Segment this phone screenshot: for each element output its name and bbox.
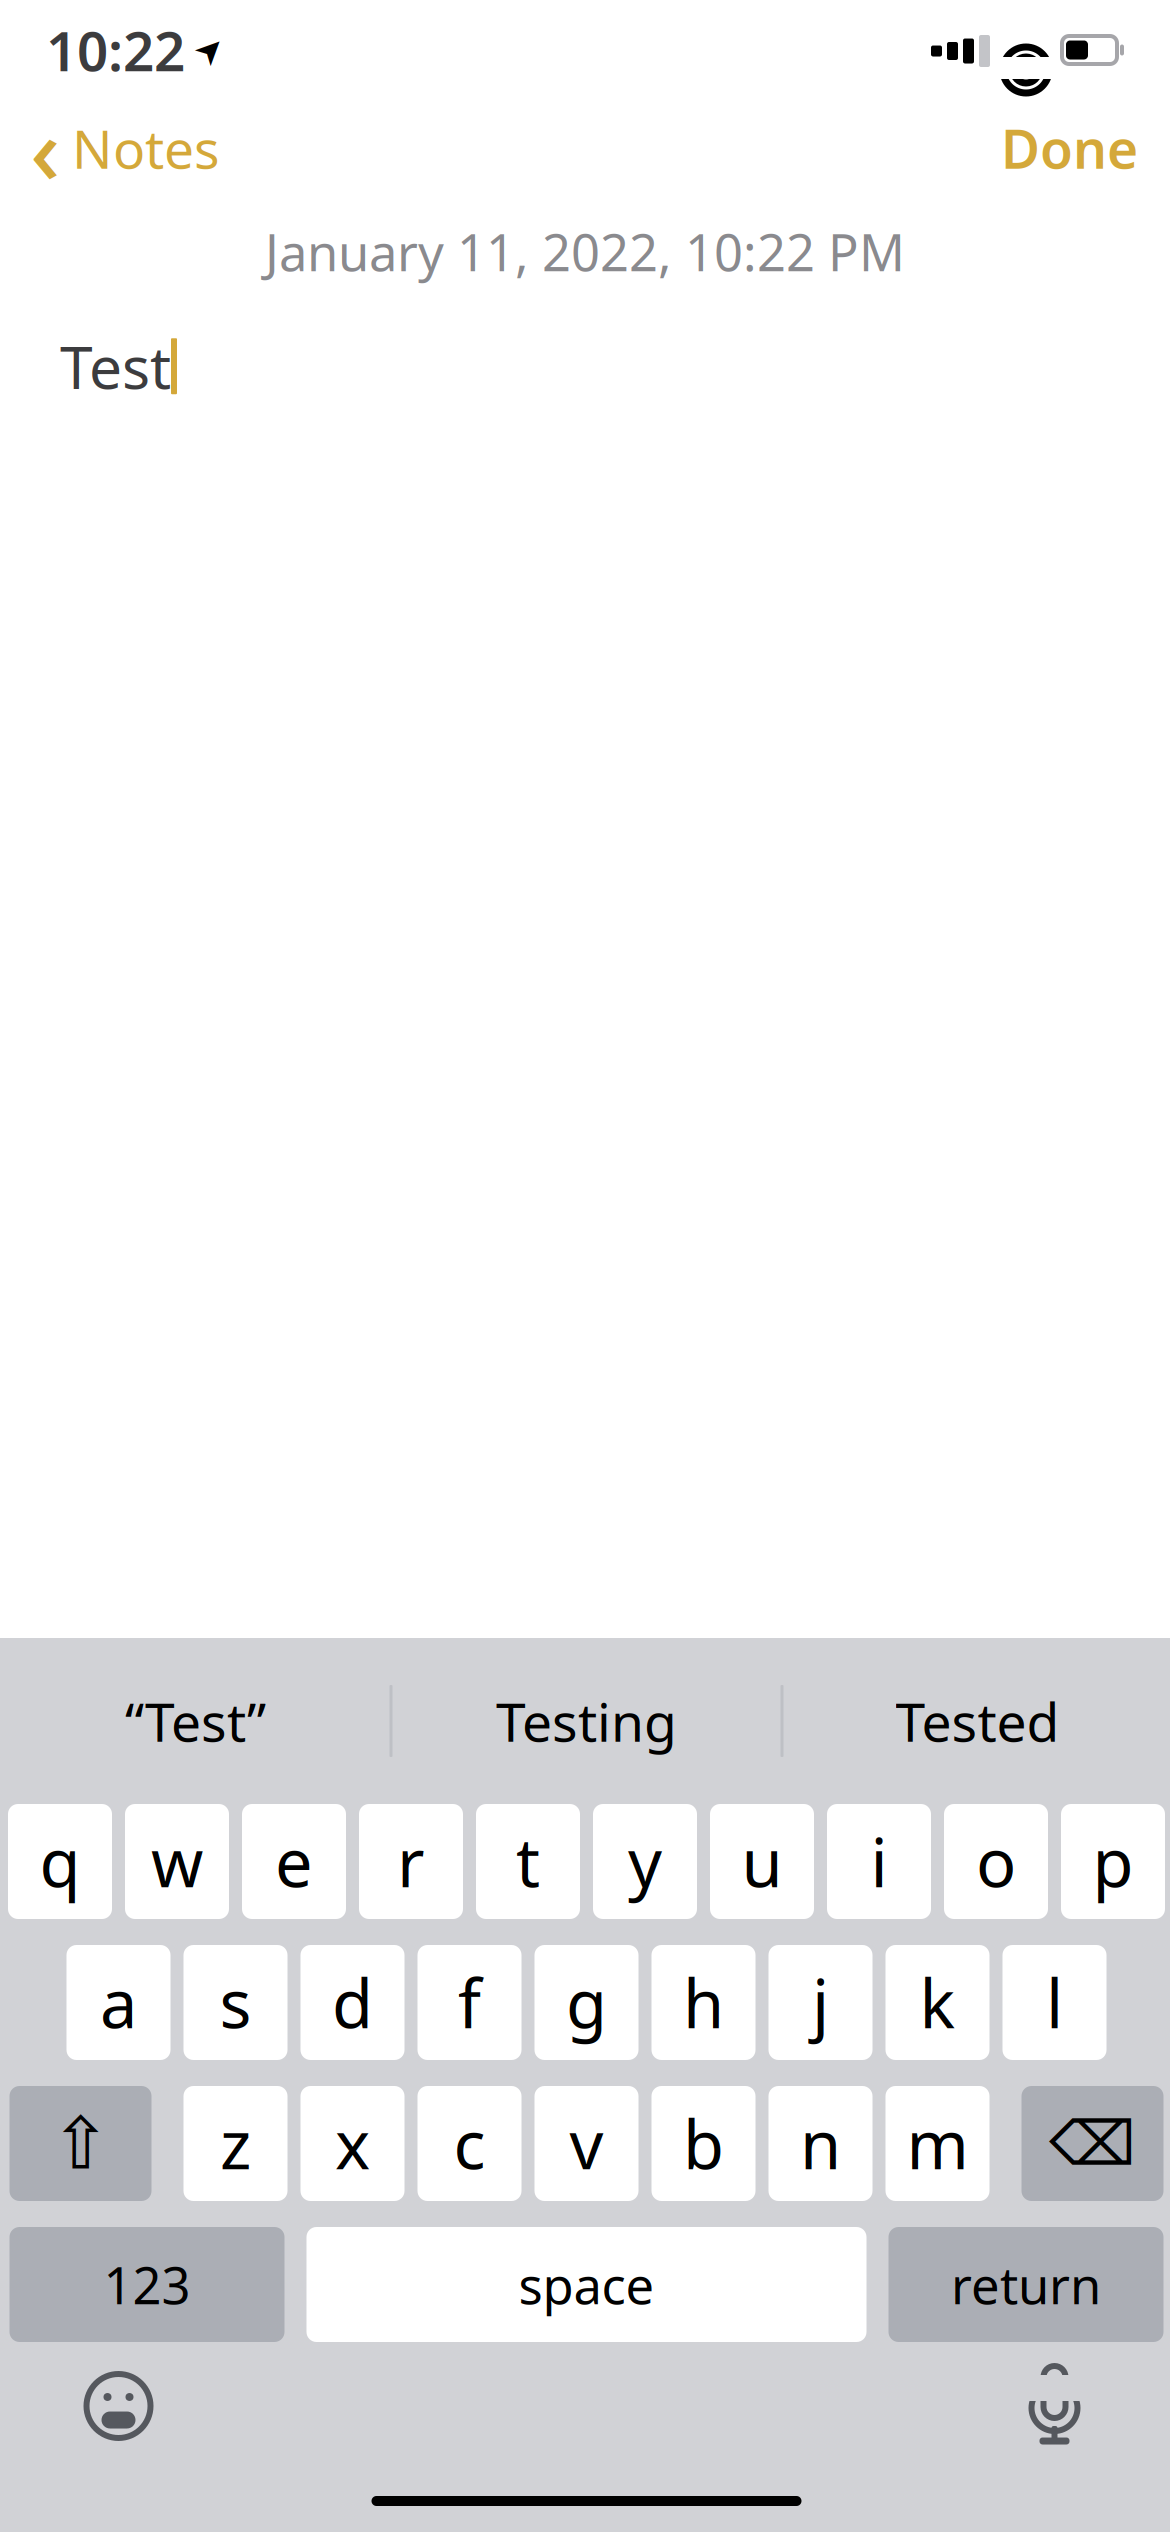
- button[interactable]: Tested: [783, 1671, 1170, 1771]
- staticText: o: [976, 1817, 1016, 1906]
- staticText: d: [332, 1958, 373, 2047]
- staticText: n: [800, 2099, 841, 2188]
- staticText: x: [335, 2099, 370, 2188]
- button[interactable]: Done: [979, 108, 1160, 188]
- staticText: h: [683, 1958, 724, 2047]
- button[interactable]: Dictate: [1019, 2361, 1089, 2451]
- staticText: “Test”: [125, 1686, 266, 1756]
- button[interactable]: q: [8, 1804, 112, 1919]
- staticText: r: [397, 1817, 425, 1906]
- staticText: g: [566, 1958, 607, 2047]
- button[interactable]: b: [651, 2086, 755, 2201]
- staticText: Notes: [72, 113, 220, 183]
- staticText: Tested: [895, 1686, 1059, 1756]
- staticText: a: [100, 1958, 137, 2047]
- staticText: p: [1092, 1817, 1133, 1906]
- staticText: January 11, 2022, 10:22 PM: [265, 218, 905, 285]
- staticText: q: [39, 1817, 80, 1906]
- staticText: Testing: [496, 1686, 677, 1756]
- staticText: z: [220, 2099, 251, 2188]
- staticText: return: [951, 2251, 1101, 2318]
- staticText: ➤: [195, 30, 224, 70]
- staticText: w: [151, 1817, 203, 1906]
- staticText: j: [812, 1958, 829, 2047]
- staticText: ‹: [30, 86, 60, 210]
- button[interactable]: n: [768, 2086, 872, 2201]
- staticText: t: [516, 1817, 540, 1906]
- button[interactable]: Testing: [392, 1671, 780, 1771]
- button[interactable]: z: [183, 2086, 287, 2201]
- button[interactable]: s: [183, 1945, 287, 2060]
- staticText: 10:22: [46, 14, 185, 86]
- button[interactable]: space: [306, 2227, 866, 2342]
- staticText: 123: [103, 2251, 190, 2318]
- button[interactable]: w: [125, 1804, 229, 1919]
- button[interactable]: v: [534, 2086, 638, 2201]
- staticText: f: [458, 1958, 481, 2047]
- button[interactable]: i: [827, 1804, 931, 1919]
- button[interactable]: Shift: [9, 2086, 151, 2201]
- staticText: m: [906, 2099, 968, 2188]
- button[interactable]: r: [359, 1804, 463, 1919]
- staticText: u: [741, 1817, 782, 1906]
- button[interactable]: return: [888, 2227, 1163, 2342]
- staticText: b: [683, 2099, 724, 2188]
- button[interactable]: l: [1002, 1945, 1106, 2060]
- button[interactable]: Emoji: [83, 2371, 153, 2441]
- button[interactable]: t: [476, 1804, 580, 1919]
- button[interactable]: Delete: [1021, 2086, 1163, 2201]
- button[interactable]: o: [944, 1804, 1048, 1919]
- staticText: v: [569, 2099, 603, 2188]
- staticText: ⇧: [50, 2103, 110, 2184]
- button[interactable]: j: [768, 1945, 872, 2060]
- button[interactable]: x: [300, 2086, 404, 2201]
- button[interactable]: k: [885, 1945, 989, 2060]
- button[interactable]: 123: [9, 2227, 284, 2342]
- button[interactable]: a: [66, 1945, 170, 2060]
- button[interactable]: e: [242, 1804, 346, 1919]
- button[interactable]: g: [534, 1945, 638, 2060]
- button[interactable]: ‹: [10, 108, 240, 188]
- staticText: ⌫: [1049, 2109, 1136, 2178]
- button[interactable]: y: [593, 1804, 697, 1919]
- button[interactable]: m: [885, 2086, 989, 2201]
- staticText: s: [219, 1958, 251, 2047]
- staticText: c: [453, 2099, 485, 2188]
- staticText: space: [518, 2251, 654, 2318]
- button[interactable]: d: [300, 1945, 404, 2060]
- staticText: i: [870, 1817, 887, 1906]
- staticText: Test: [60, 327, 171, 405]
- button[interactable]: h: [651, 1945, 755, 2060]
- staticText: Done: [1001, 113, 1138, 183]
- staticText: l: [1046, 1958, 1063, 2047]
- button[interactable]: c: [417, 2086, 521, 2201]
- button[interactable]: f: [417, 1945, 521, 2060]
- button[interactable]: u: [710, 1804, 814, 1919]
- staticText: y: [628, 1817, 662, 1906]
- staticText: e: [275, 1817, 313, 1906]
- button[interactable]: p: [1061, 1804, 1165, 1919]
- staticText: k: [919, 1958, 955, 2047]
- button[interactable]: “Test”: [1, 1671, 389, 1771]
